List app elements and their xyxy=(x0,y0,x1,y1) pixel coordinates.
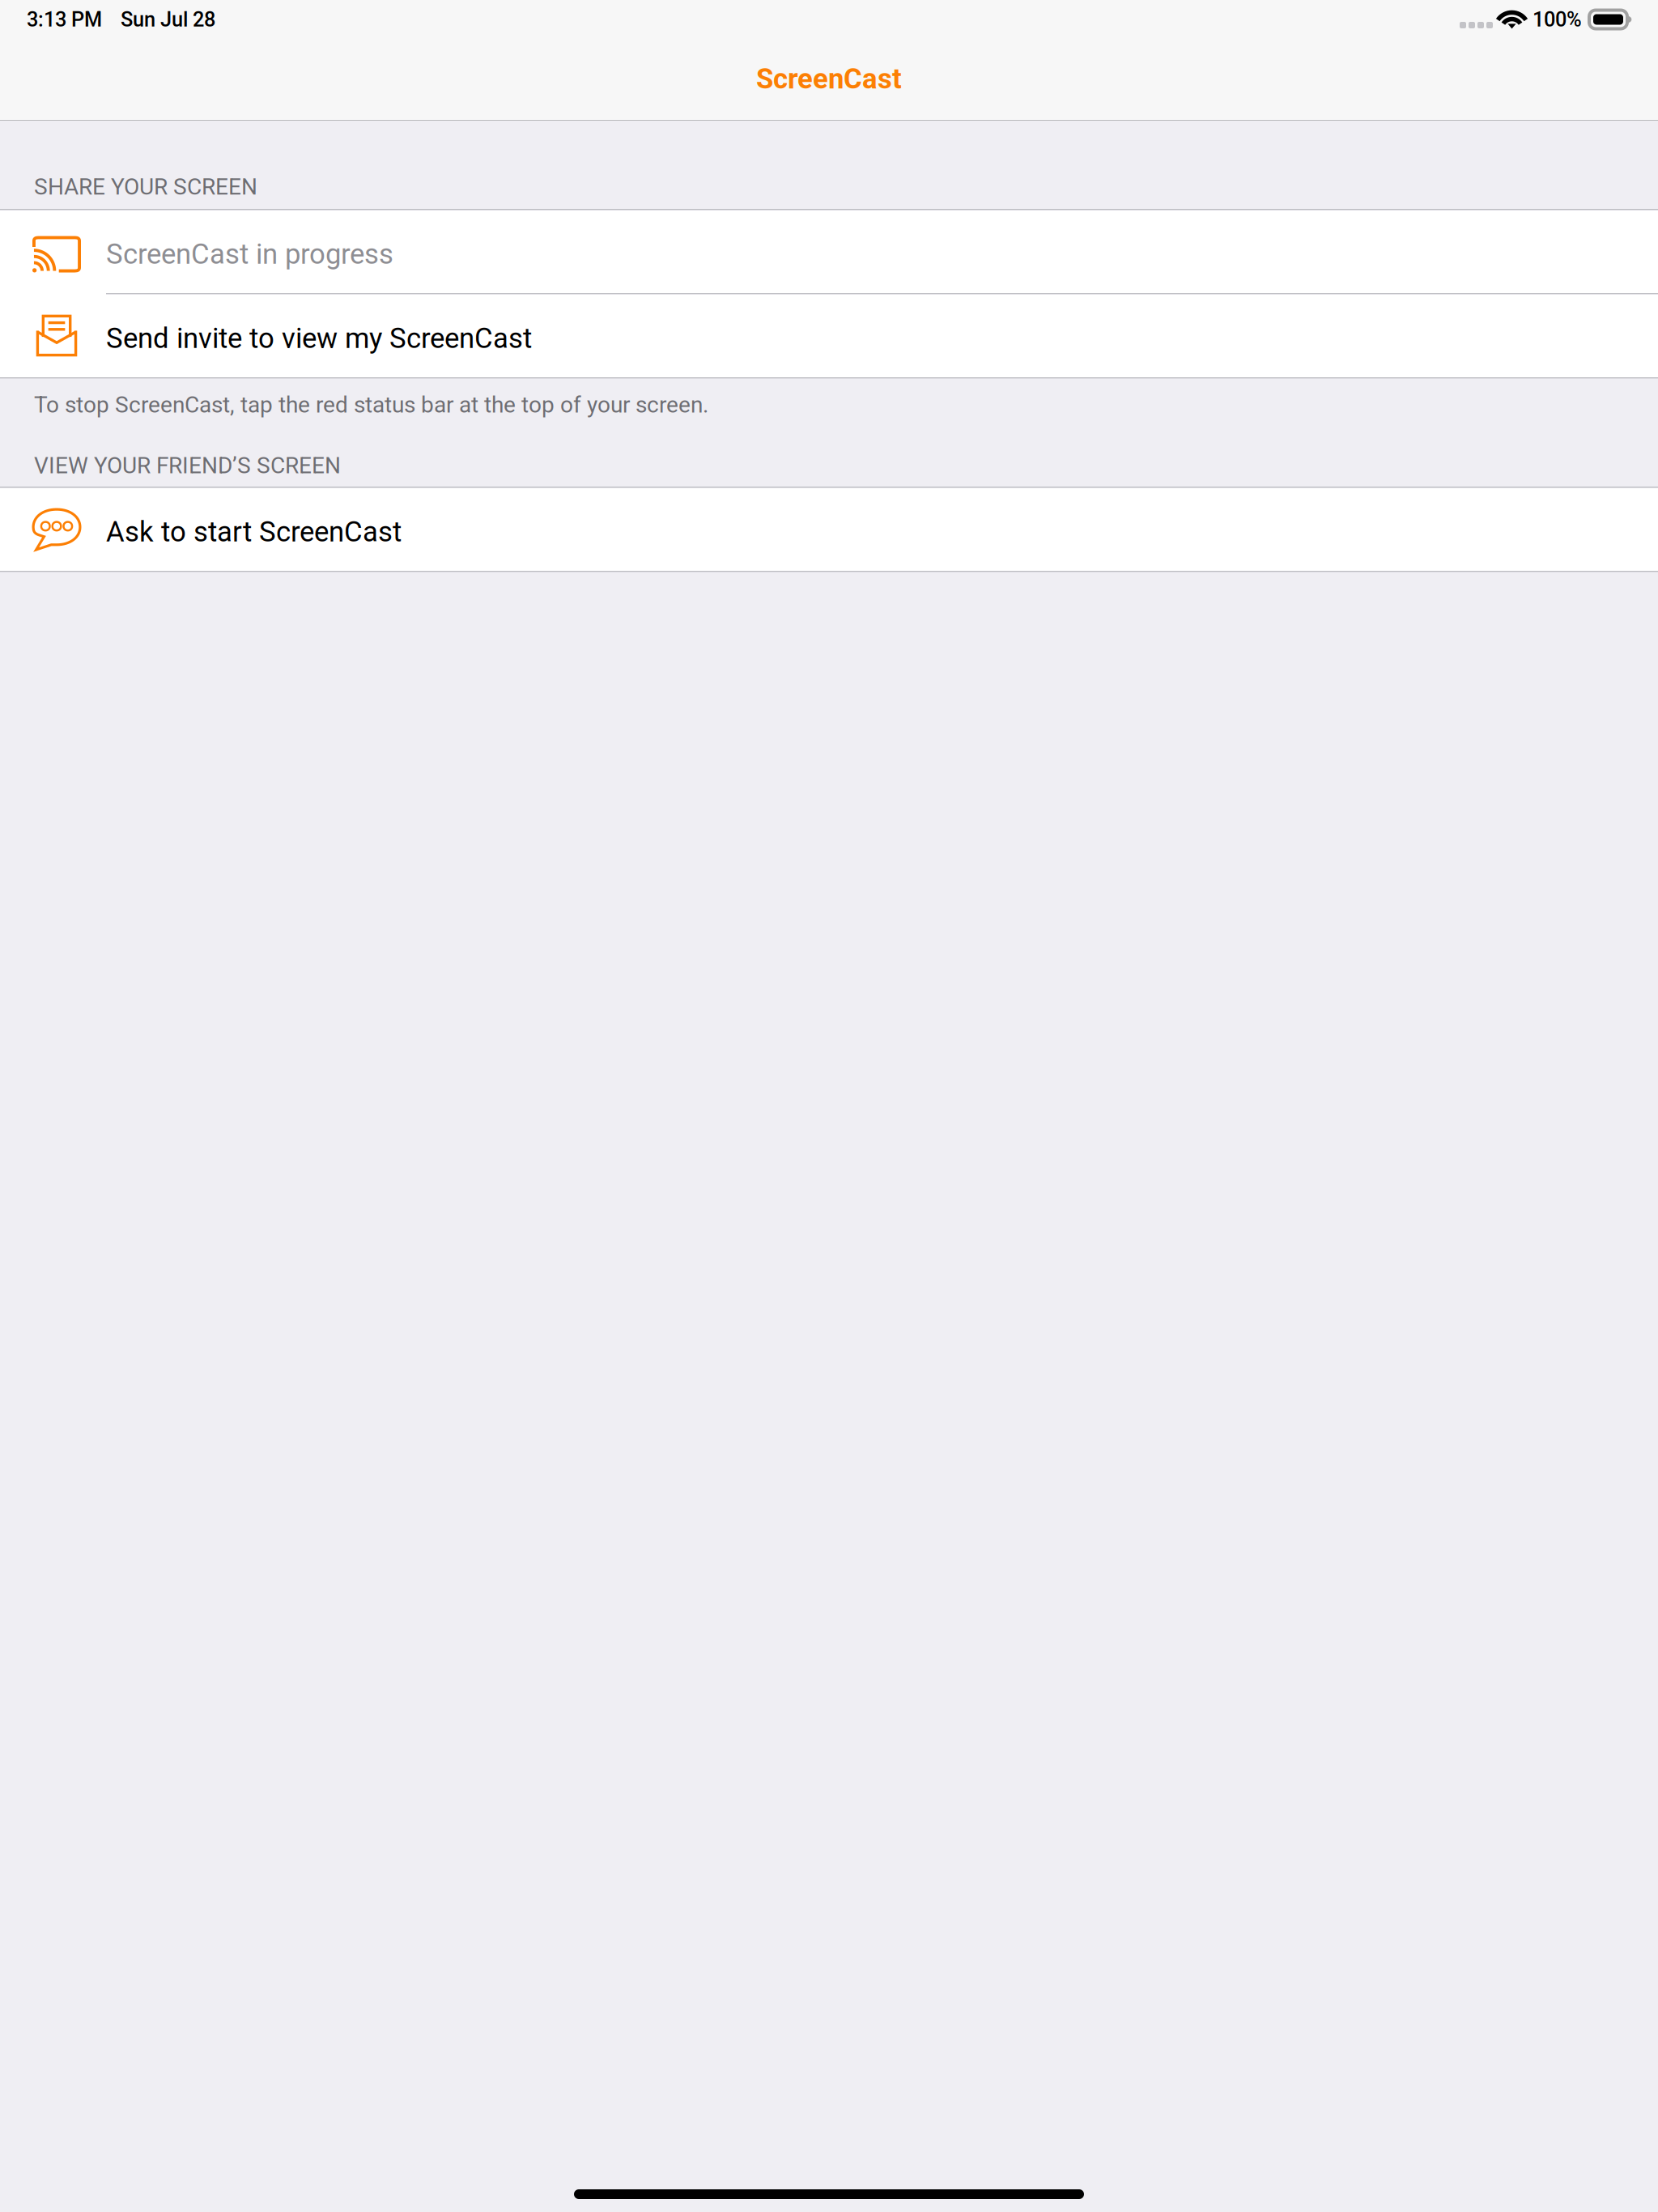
staticText: Send invite to view my ScreenCast xyxy=(106,322,532,355)
staticText: 100% xyxy=(1533,7,1582,31)
button[interactable]: Ask to start ScreenCast xyxy=(0,488,1658,571)
staticText: 3:13 PM xyxy=(27,7,102,31)
staticText: ScreenCast in progress xyxy=(106,238,393,271)
button[interactable]: Send invite to view my ScreenCast xyxy=(0,295,1658,377)
staticText: To stop ScreenCast, tap the red status b… xyxy=(34,392,708,418)
staticText: Sun Jul 28 xyxy=(121,7,215,31)
staticText: Ask to start ScreenCast xyxy=(106,516,402,548)
button[interactable]: ScreenCast xyxy=(756,63,902,95)
button[interactable]: ScreenCast in progress xyxy=(0,211,1658,293)
staticText: ScreenCast xyxy=(756,63,902,95)
staticText: SHARE YOUR SCREEN xyxy=(34,173,257,200)
staticText: VIEW YOUR FRIEND’S SCREEN xyxy=(34,452,341,479)
